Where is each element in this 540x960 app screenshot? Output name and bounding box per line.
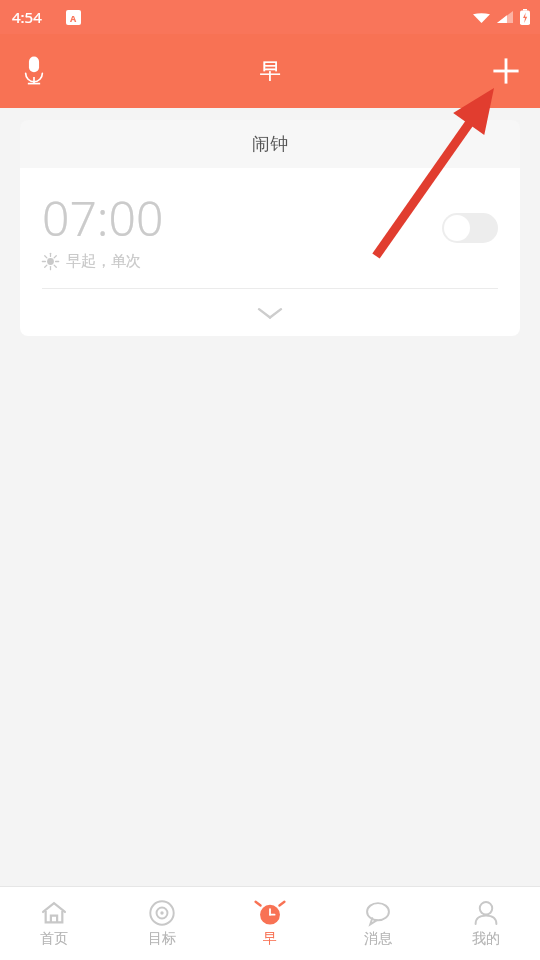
button[interactable]: Add alarm [482,47,530,95]
staticText: 早 [263,930,277,948]
button[interactable]: 早 [216,887,324,960]
staticText: 闹钟 [252,133,288,156]
button[interactable]: 我的 [432,887,540,960]
staticText: 07:00 [42,185,164,250]
button[interactable]: Alarm toggle, off [442,213,498,243]
button[interactable]: 07:00 [20,168,520,288]
staticText: 早起，单次 [66,252,141,271]
button[interactable]: 消息 [324,887,432,960]
staticText: 4:54 [12,7,42,27]
staticText: 目标 [148,930,176,948]
staticText: 首页 [40,930,68,948]
staticText: 早 [260,58,281,84]
staticText: A [70,12,77,24]
button[interactable]: 目标 [108,887,216,960]
staticText: 我的 [472,930,500,948]
staticText: 消息 [364,930,392,948]
button[interactable]: Voice input [10,47,58,95]
button[interactable]: 首页 [0,887,108,960]
